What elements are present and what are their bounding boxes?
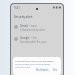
staticText: • 2m <box>31 36 37 40</box>
button[interactable]: Gmail <box>11 23 63 33</box>
staticText: 9:41 <box>14 6 20 10</box>
staticText: Google <box>20 36 30 40</box>
staticText: Critical security alert <box>20 28 45 32</box>
button[interactable]: No thanks <box>36 68 49 72</box>
staticText: Was this you? <box>15 65 31 68</box>
button[interactable]: Someone just used your password <box>13 57 61 75</box>
staticText: Someone just used your password <box>15 59 54 62</box>
staticText: • now <box>29 24 37 28</box>
staticText: Security alert for your <box>20 40 47 44</box>
button[interactable]: Google <box>11 35 63 45</box>
button[interactable]: Yes <box>53 68 58 72</box>
staticText: Security alert <box>14 15 33 19</box>
staticText: Gmail <box>20 24 28 28</box>
staticText: to try to sign in to your account. <box>15 62 51 65</box>
